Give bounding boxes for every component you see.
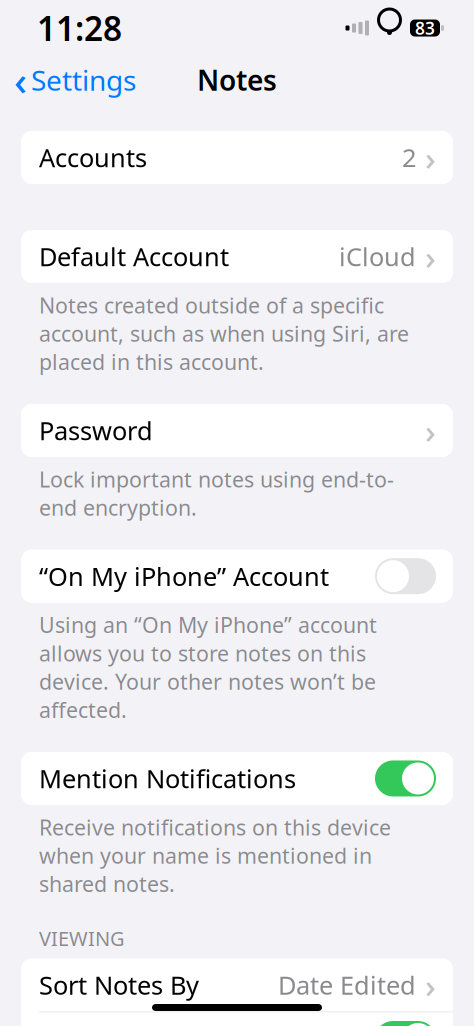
staticText: › xyxy=(425,963,436,1007)
staticText: Mention Notifications xyxy=(39,762,296,795)
staticText: 2 xyxy=(402,141,416,174)
button[interactable]: Accounts xyxy=(21,131,453,184)
staticText: ‹ xyxy=(14,53,27,106)
button[interactable]: “On My iPhone” Account xyxy=(21,550,453,603)
button[interactable]: Group Notes By Date xyxy=(21,1012,453,1026)
staticText: VIEWING xyxy=(39,925,125,952)
staticText: › xyxy=(425,135,436,180)
button[interactable]: Mention Notifications xyxy=(21,752,453,805)
staticText: Using an “On My iPhone” account allows y… xyxy=(39,611,377,724)
staticText: › xyxy=(425,408,436,453)
staticText: Accounts xyxy=(39,141,147,174)
staticText: Notes xyxy=(197,61,277,99)
staticText: Default Account xyxy=(39,240,229,273)
staticText: Settings xyxy=(31,61,136,99)
staticText: 83 xyxy=(415,16,435,39)
staticText: Sort Notes By xyxy=(39,968,199,1002)
staticText: “On My iPhone” Account xyxy=(39,559,329,593)
staticText: Lock important notes using end-to-end en… xyxy=(39,465,394,522)
staticText: Password xyxy=(39,414,153,447)
button[interactable]: Password xyxy=(21,404,453,457)
staticText: iCloud xyxy=(339,240,416,273)
staticText: Receive notifications on this device whe… xyxy=(39,813,391,898)
button[interactable]: Default Account xyxy=(21,230,453,283)
staticText: Date Edited xyxy=(278,968,416,1002)
button[interactable]: Sort Notes By xyxy=(21,958,453,1011)
staticText: Notes created outside of a specific acco… xyxy=(39,291,409,376)
staticText: 11:28 xyxy=(37,6,122,50)
staticText: › xyxy=(425,234,436,279)
button[interactable]: ‹ xyxy=(0,47,136,112)
